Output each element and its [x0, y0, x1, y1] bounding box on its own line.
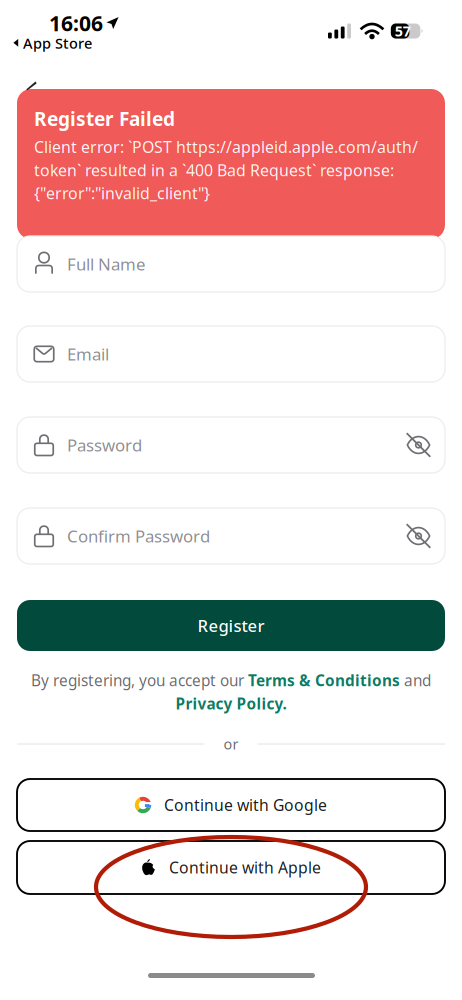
- staticText: Password: [67, 434, 142, 456]
- button[interactable]: Privacy Policy.: [175, 693, 286, 714]
- button[interactable]: Terms & Conditions: [248, 670, 400, 690]
- button[interactable]: Email: [17, 326, 445, 382]
- staticText: Full Name: [67, 253, 145, 275]
- staticText: By registering, you accept our: [31, 670, 248, 690]
- staticText: Confirm Password: [67, 525, 210, 547]
- staticText: or: [223, 734, 238, 753]
- staticText: 16:06: [49, 9, 103, 37]
- staticText: Email: [67, 343, 109, 365]
- staticText: Register: [197, 614, 264, 636]
- button[interactable]: Continue with Google: [17, 779, 445, 831]
- staticText: Terms & Conditions: [248, 670, 400, 690]
- staticText: Client error: `POST https://appleid.appl…: [34, 135, 418, 205]
- button[interactable]: Full Name: [17, 236, 445, 292]
- staticText: 57: [395, 21, 411, 40]
- staticText: Continue with Google: [164, 795, 327, 815]
- staticText: Register Failed: [34, 106, 175, 131]
- staticText: Continue with Apple: [169, 857, 321, 878]
- button[interactable]: Continue with Apple: [17, 841, 445, 894]
- button[interactable]: Register: [17, 600, 445, 651]
- staticText: Privacy Policy.: [175, 693, 286, 714]
- button[interactable]: Confirm Password: [17, 508, 445, 564]
- button[interactable]: Password: [17, 417, 445, 473]
- staticText: and: [400, 670, 431, 690]
- staticText: App Store: [23, 33, 92, 53]
